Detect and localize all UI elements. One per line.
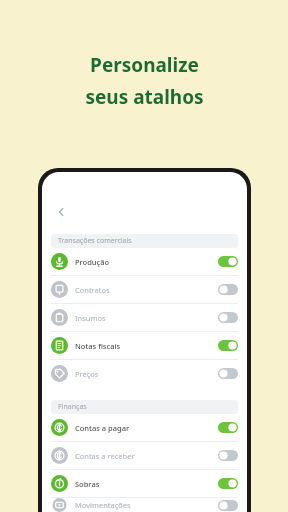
staticText: seus atalhos <box>85 84 204 110</box>
staticText: Personalize <box>90 52 199 78</box>
staticText: Insumos <box>75 313 106 323</box>
button[interactable]: Insumos <box>42 304 247 331</box>
button[interactable]: Sobras <box>42 470 247 497</box>
staticText: Notas fiscais <box>75 341 121 351</box>
staticText: Transações comerciais <box>58 236 132 246</box>
staticText: Contratos <box>75 285 110 295</box>
button[interactable]: Contas a pagar <box>42 414 247 441</box>
staticText: Preços <box>75 369 99 379</box>
staticText: Finanças <box>58 402 87 412</box>
staticText: Produção <box>75 257 110 267</box>
button[interactable]: Notas fiscais <box>42 332 247 359</box>
staticText: Movimentações <box>75 500 131 510</box>
button[interactable]: Contas a receber <box>42 442 247 469</box>
button[interactable]: Contratos <box>42 276 247 303</box>
staticText: Contas a pagar <box>75 423 130 433</box>
button[interactable]: Produção <box>42 248 247 275</box>
staticText: Sobras <box>75 479 100 489</box>
button[interactable]: Preços <box>42 360 247 387</box>
staticText: Contas a receber <box>75 451 135 461</box>
button[interactable]: Movimentações <box>42 498 247 512</box>
button[interactable]: Voltar <box>51 202 71 222</box>
